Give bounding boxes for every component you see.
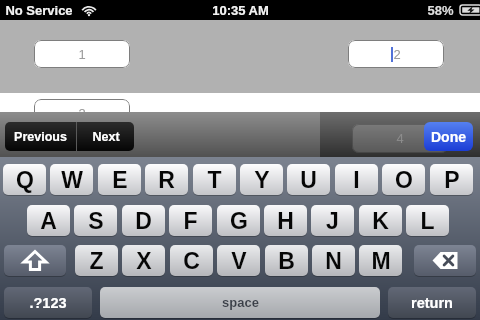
staticText: X xyxy=(136,248,152,274)
button[interactable]: Y xyxy=(240,164,283,195)
button[interactable]: B xyxy=(265,245,308,276)
staticText: V xyxy=(231,248,247,274)
button[interactable]: I xyxy=(335,164,378,195)
staticText: M xyxy=(371,248,391,274)
button[interactable]: X xyxy=(122,245,165,276)
staticText: G xyxy=(230,208,248,234)
staticText: S xyxy=(88,208,104,234)
button[interactable]: A xyxy=(27,205,70,236)
button[interactable]: E xyxy=(98,164,141,195)
button[interactable]: T xyxy=(193,164,236,195)
staticText: F xyxy=(183,208,198,234)
staticText: T xyxy=(207,167,222,193)
staticText: K xyxy=(372,208,389,234)
staticText: Next xyxy=(92,130,120,144)
staticText: 3 xyxy=(78,106,86,121)
staticText: U xyxy=(300,167,317,193)
button[interactable]: O xyxy=(382,164,425,195)
button[interactable]: G xyxy=(217,205,260,236)
button[interactable]: P xyxy=(430,164,473,195)
staticText: Y xyxy=(254,167,270,193)
staticText: 58% xyxy=(427,3,454,18)
staticText: Z xyxy=(89,248,104,274)
staticText: Q xyxy=(16,167,34,193)
staticText: space xyxy=(222,295,259,310)
staticText: Previous xyxy=(14,130,67,144)
button[interactable]: C xyxy=(170,245,213,276)
staticText: A xyxy=(40,208,57,234)
button[interactable]: F xyxy=(169,205,212,236)
button[interactable]: Q xyxy=(3,164,46,195)
staticText: 1 xyxy=(78,47,86,62)
staticText: L xyxy=(420,208,435,234)
button[interactable]: Shift xyxy=(4,245,66,276)
staticText: J xyxy=(326,208,339,234)
button[interactable]: 3 xyxy=(34,99,130,127)
button[interactable]: Done xyxy=(424,122,473,151)
staticText: C xyxy=(183,248,200,274)
button[interactable]: U xyxy=(287,164,330,195)
button[interactable]: H xyxy=(264,205,307,236)
button[interactable]: Previous xyxy=(5,122,76,151)
button[interactable]: V xyxy=(217,245,260,276)
staticText: Done xyxy=(431,129,466,145)
button[interactable]: S xyxy=(74,205,117,236)
button[interactable]: L xyxy=(406,205,449,236)
staticText: .?123 xyxy=(29,295,67,311)
button[interactable]: 2 xyxy=(348,40,444,68)
staticText: return xyxy=(411,295,453,311)
button[interactable]: Z xyxy=(75,245,118,276)
button[interactable]: K xyxy=(359,205,402,236)
staticText: W xyxy=(61,167,83,193)
button[interactable]: D xyxy=(122,205,165,236)
button[interactable]: space xyxy=(100,287,380,318)
staticText: No Service xyxy=(5,3,73,18)
staticText: I xyxy=(353,167,360,193)
button[interactable]: .?123 xyxy=(4,287,92,318)
button[interactable]: Next xyxy=(77,122,134,151)
button[interactable]: R xyxy=(145,164,188,195)
staticText: 4 xyxy=(396,131,404,146)
staticText: 10:35 AM xyxy=(212,3,269,18)
button[interactable]: Backspace xyxy=(414,245,476,276)
staticText: O xyxy=(395,167,413,193)
staticText: 2 xyxy=(393,47,401,62)
staticText: H xyxy=(277,208,294,234)
button[interactable]: return xyxy=(388,287,476,318)
button[interactable]: 4 xyxy=(352,124,448,153)
staticText: P xyxy=(444,167,460,193)
staticText: N xyxy=(325,248,342,274)
button[interactable]: M xyxy=(359,245,402,276)
staticText: D xyxy=(135,208,152,234)
button[interactable]: W xyxy=(50,164,93,195)
button[interactable]: 1 xyxy=(34,40,130,68)
staticText: E xyxy=(112,167,128,193)
button[interactable]: N xyxy=(312,245,355,276)
staticText: B xyxy=(278,248,295,274)
button[interactable]: J xyxy=(311,205,354,236)
staticText: R xyxy=(158,167,175,193)
